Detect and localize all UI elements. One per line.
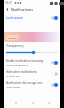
button[interactable]: Feature [4, 32, 60, 42]
button[interactable]: Toggle [51, 83, 58, 87]
staticText: Notification dot on app icon [6, 81, 43, 85]
staticText: Snooze notifications [6, 64, 28, 67]
staticText: 10:21 [5, 1, 13, 5]
staticText: Hide silent notifications [6, 70, 37, 74]
staticText: Enable notification snoozing [6, 59, 44, 63]
button[interactable]: Toggle [51, 61, 58, 65]
staticText: Allow badges [6, 86, 21, 89]
staticText: In status bar [6, 75, 20, 78]
button[interactable]: Notification dot on app icon [4, 79, 60, 90]
button[interactable]: Toggle [51, 72, 58, 76]
staticText: Feature [8, 36, 17, 39]
button[interactable]: Back [11, 98, 20, 107]
button[interactable]: Back [4, 6, 11, 13]
button[interactable]: Home [28, 98, 37, 107]
staticText: Notifications [11, 7, 33, 12]
button[interactable]: Hide silent notifications [4, 68, 60, 79]
staticText: Lock screen [6, 16, 51, 20]
button[interactable]: Lock screen [4, 13, 60, 22]
button[interactable]: Enable notification snoozing [4, 57, 60, 68]
button[interactable]: Transparency slider [6, 51, 58, 54]
staticText: Transparency [6, 44, 24, 48]
button[interactable]: Toggle [51, 16, 58, 20]
button[interactable]: Recents [44, 98, 53, 107]
